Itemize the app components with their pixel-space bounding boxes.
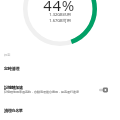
button[interactable]: 清理白名單: [0, 102, 120, 118]
staticText: 設定: [4, 53, 11, 57]
staticText: 記憶體加速: [4, 85, 23, 90]
staticText: 1.32GB已用: [0, 12, 120, 17]
button[interactable]: Toggle memory boost: [99, 87, 108, 93]
staticText: 定時清理: [4, 66, 20, 71]
staticText: 定時清理: [4, 66, 20, 71]
staticText: 1.67GB可用: [0, 18, 120, 23]
staticText: 記憶體使用率過高時，自動清理後台應用，提高運行速度: [4, 90, 79, 94]
staticText: 記憶體加速: [4, 85, 23, 90]
button[interactable]: 記憶體加速: [0, 80, 120, 99]
staticText: 清理白名單: [4, 108, 23, 113]
staticText: 1.67GB可用: [0, 18, 120, 23]
staticText: 44%: [0, 0, 119, 15]
staticText: 1.32GB已用: [0, 12, 120, 17]
button[interactable]: 定時清理: [0, 60, 120, 76]
staticText: 記憶體使用率過高時，自動清理後台應用，提高運行速度: [4, 90, 79, 94]
staticText: 清理白名單: [4, 108, 23, 113]
